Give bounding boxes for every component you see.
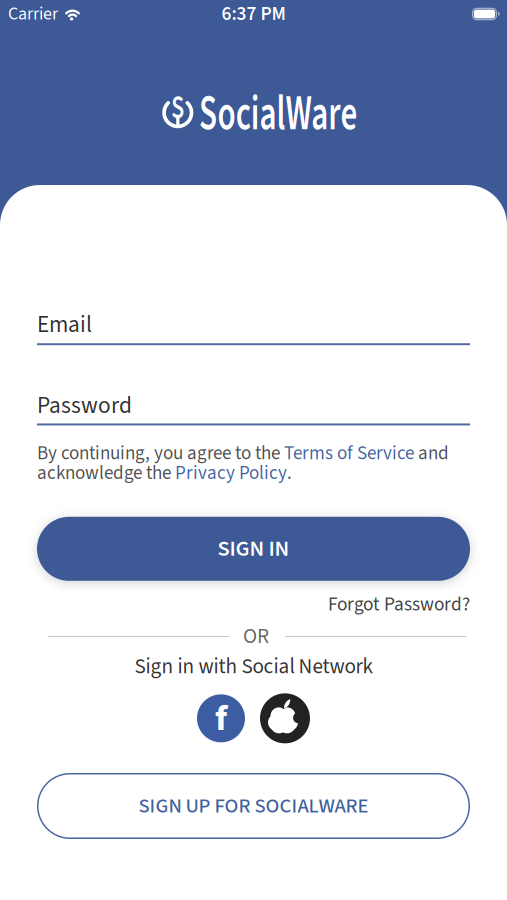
staticText: OR (243, 625, 269, 648)
staticText: SocialWare (162, 79, 395, 149)
staticText: Sign in with Social Network (134, 651, 372, 682)
staticText: S I G N U P F O R S O C I A L W A R E (138, 791, 368, 821)
staticText: By continuing, you agree to the (37, 443, 284, 463)
staticText: Carrier (8, 1, 58, 27)
button[interactable]: Terms of Service (284, 443, 414, 463)
button[interactable]: Sign in with Facebook (197, 693, 245, 744)
staticText: S (168, 83, 187, 132)
button[interactable]: Password text field (37, 389, 470, 425)
staticText: Forgot Password? (328, 591, 470, 618)
button[interactable]: Sign in with Apple (260, 693, 310, 743)
staticText: . (287, 463, 292, 483)
button[interactable]: Forgot Password? (328, 591, 470, 618)
button[interactable]: Privacy Policy (175, 463, 287, 483)
staticText: Terms of Service (284, 443, 414, 463)
staticText: acknowledge the (37, 463, 175, 483)
staticText: Email (37, 308, 92, 341)
staticText: Password (37, 389, 132, 422)
button[interactable]: S I G N U P F O R S O C I A L W A R E (37, 773, 470, 839)
button[interactable]: Email text field (37, 308, 470, 345)
button[interactable]: S I G N I N (37, 517, 470, 581)
staticText: 6:37 PM (221, 0, 285, 28)
staticText: S I G N I N (217, 533, 289, 565)
staticText: Privacy Policy (175, 463, 287, 483)
staticText: f (215, 693, 227, 744)
staticText: and (414, 443, 449, 463)
